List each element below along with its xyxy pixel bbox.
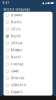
staticText: siSwati — [11, 69, 19, 73]
staticText: isiXhosa — [11, 41, 22, 45]
button[interactable]: Afrikaans — [3, 47, 52, 54]
button[interactable]: isiZulu — [3, 26, 52, 33]
button[interactable]: Kiswahili — [3, 89, 52, 96]
button[interactable]: Sesotho — [3, 19, 52, 26]
button[interactable]: Xitsonga — [3, 61, 52, 68]
staticText: Sepedi — [11, 55, 21, 59]
button[interactable]: isiXhosa — [3, 40, 52, 47]
staticText: 9:41 — [3, 1, 10, 5]
staticText: Xitsonga — [11, 62, 23, 66]
button[interactable]: isiNdebele — [3, 82, 52, 89]
staticText: isiZulu — [11, 27, 21, 31]
button[interactable]: Setswana — [3, 12, 52, 19]
staticText: Afrikaans — [11, 48, 22, 52]
button[interactable]: English — [3, 33, 52, 40]
staticText: Sesotho — [11, 20, 22, 24]
button[interactable]: Tshivenda — [3, 75, 52, 82]
staticText: Tshivenda — [11, 76, 24, 80]
staticText: Setswana — [11, 13, 22, 17]
staticText: English — [11, 34, 21, 38]
button[interactable]: Sepedi — [3, 54, 52, 61]
staticText: isiNdebele — [11, 83, 27, 87]
staticText: Kiswahili — [11, 90, 23, 94]
staticText: Select a language — [3, 8, 30, 11]
button[interactable]: siSwati — [3, 68, 52, 75]
